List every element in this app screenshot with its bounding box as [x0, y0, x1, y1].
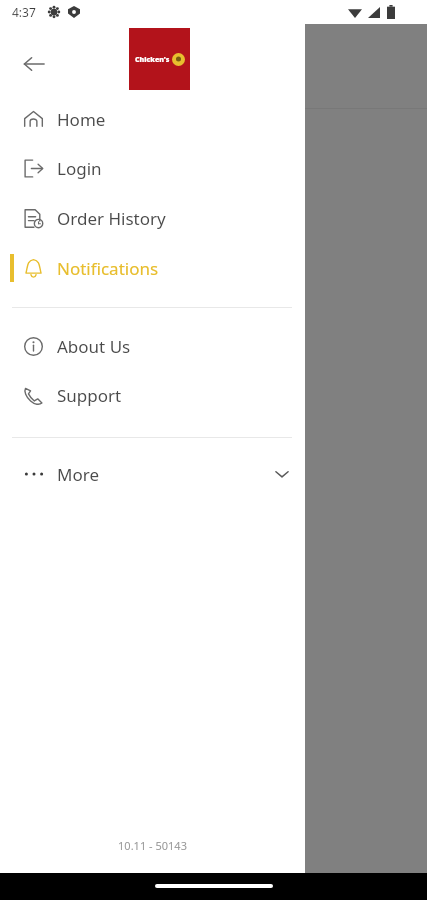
button[interactable]: More — [0, 454, 305, 494]
button[interactable]: Notifications — [0, 248, 305, 288]
button[interactable]: Home — [0, 99, 305, 139]
staticText: More — [57, 463, 99, 486]
staticText: Order History — [57, 207, 166, 230]
staticText: Home — [57, 108, 106, 131]
staticText: Support — [57, 384, 122, 407]
staticText: 10.11 - 50143 — [118, 838, 187, 853]
staticText: About Us — [57, 335, 131, 358]
staticText: Notifications — [57, 257, 159, 280]
staticText: 4:37 — [12, 4, 36, 20]
button[interactable]: Support — [0, 375, 305, 415]
button[interactable]: Order History — [0, 198, 305, 238]
button[interactable]: Chicken's logo — [129, 28, 190, 90]
button[interactable]: Back — [10, 40, 58, 88]
staticText: Login — [57, 157, 102, 180]
staticText: Chicken's — [135, 55, 170, 65]
button[interactable]: Login — [0, 148, 305, 188]
button[interactable]: About Us — [0, 326, 305, 366]
